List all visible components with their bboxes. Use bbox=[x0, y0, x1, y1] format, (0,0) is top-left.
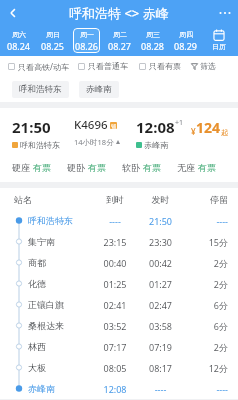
button[interactable]: 周日 bbox=[39, 28, 67, 53]
staticText: 23:15 bbox=[92, 236, 138, 248]
staticText: 12:08 bbox=[136, 117, 175, 137]
staticText: 03:52 bbox=[92, 320, 138, 332]
staticText: 02:41 bbox=[92, 299, 138, 311]
staticText: 软卧 bbox=[122, 162, 140, 173]
staticText: 07:19 bbox=[138, 341, 183, 353]
button[interactable]: 赤峰南 bbox=[0, 378, 238, 399]
staticText: 02:47 bbox=[138, 299, 183, 311]
button[interactable]: 正镶白旗 bbox=[0, 294, 238, 315]
staticText: 124 bbox=[196, 118, 221, 137]
staticText: 桑根达来 bbox=[28, 320, 64, 331]
button[interactable]: 21:50 bbox=[0, 108, 238, 182]
staticText: 只看有票 bbox=[149, 61, 181, 71]
staticText: 呼和浩特东 bbox=[28, 215, 73, 226]
staticText: 有票 bbox=[198, 162, 216, 173]
staticText: ---- bbox=[183, 383, 228, 395]
staticText: 21:50 bbox=[138, 215, 183, 227]
staticText: ---- bbox=[183, 215, 228, 227]
button[interactable]: More options bbox=[212, 0, 238, 26]
button[interactable]: 呼和浩特东 bbox=[12, 81, 69, 98]
staticText: 周日 bbox=[46, 30, 60, 39]
staticText: 只看普通车 bbox=[88, 61, 128, 71]
staticText: 站名 bbox=[14, 194, 92, 205]
staticText: 周一 bbox=[80, 30, 94, 39]
staticText: 2分 bbox=[183, 278, 228, 290]
staticText: 硬卧 bbox=[67, 162, 85, 173]
staticText: 08:17 bbox=[138, 362, 183, 374]
staticText: 2分 bbox=[183, 257, 228, 269]
staticText: 08.28 bbox=[141, 40, 165, 52]
staticText: 周二 bbox=[113, 30, 127, 39]
button[interactable]: 周一 bbox=[73, 28, 100, 53]
staticText: 硬座 bbox=[12, 162, 30, 173]
staticText: 有票 bbox=[88, 162, 106, 173]
staticText: 集宁南 bbox=[28, 236, 55, 247]
staticText: 08.27 bbox=[108, 40, 132, 52]
staticText: 08.29 bbox=[174, 40, 198, 52]
button[interactable]: 林西 bbox=[0, 336, 238, 357]
staticText: 07:17 bbox=[92, 341, 138, 353]
staticText: 化德 bbox=[28, 278, 46, 289]
staticText: 01:27 bbox=[138, 278, 183, 290]
staticText: 15分 bbox=[183, 236, 228, 248]
button[interactable]: 硬座 bbox=[12, 162, 67, 173]
staticText: 铺 bbox=[111, 123, 116, 129]
button[interactable]: 赤峰南 bbox=[79, 81, 119, 98]
staticText: 赤峰南 bbox=[28, 383, 55, 394]
button[interactable]: 大板 bbox=[0, 357, 238, 378]
staticText: 周六 bbox=[12, 30, 26, 39]
staticText: 08.25 bbox=[41, 40, 65, 52]
staticText: 只看高铁/动车 bbox=[18, 61, 69, 72]
button[interactable]: Calendar bbox=[202, 27, 236, 53]
staticText: 有票 bbox=[33, 162, 51, 173]
staticText: ---- bbox=[138, 383, 183, 395]
staticText: 周四 bbox=[179, 30, 193, 39]
staticText: 08.24 bbox=[7, 40, 31, 52]
staticText: 到时 bbox=[92, 194, 138, 205]
staticText: +1 bbox=[175, 118, 184, 128]
staticText: 正镶白旗 bbox=[28, 299, 64, 310]
button[interactable]: 只看高铁/动车 bbox=[8, 61, 78, 72]
button[interactable]: 硬卧 bbox=[67, 162, 122, 173]
staticText: 筛选 bbox=[200, 61, 216, 71]
button[interactable]: 只看有票 bbox=[139, 61, 191, 71]
button[interactable]: 周三 bbox=[139, 28, 166, 53]
button[interactable]: 集宁南 bbox=[0, 231, 238, 252]
staticText: 发时 bbox=[138, 194, 183, 205]
staticText: 00:42 bbox=[138, 257, 183, 269]
staticText: 呼和浩特 <> 赤峰 bbox=[69, 4, 169, 22]
staticText: 6分 bbox=[183, 299, 228, 311]
staticText: 23:30 bbox=[138, 236, 183, 248]
staticText: 08.26 bbox=[75, 40, 99, 52]
staticText: 周三 bbox=[146, 30, 160, 39]
button[interactable]: 桑根达来 bbox=[0, 315, 238, 336]
button[interactable]: 周四 bbox=[172, 28, 199, 53]
staticText: 赤峰南 bbox=[86, 84, 112, 95]
staticText: 00:40 bbox=[92, 257, 138, 269]
button[interactable]: 只看普通车 bbox=[78, 61, 139, 71]
button[interactable]: 软卧 bbox=[122, 162, 177, 173]
staticText: 08:05 bbox=[92, 362, 138, 374]
button[interactable]: 商都 bbox=[0, 252, 238, 273]
staticText: 12:08 bbox=[92, 383, 138, 395]
staticText: 起 bbox=[221, 128, 228, 137]
button[interactable]: 周二 bbox=[106, 28, 133, 53]
staticText: 日历 bbox=[212, 42, 226, 51]
button[interactable]: 化德 bbox=[0, 273, 238, 294]
button[interactable]: 周六 bbox=[5, 28, 33, 53]
staticText: 无座 bbox=[177, 162, 195, 173]
button[interactable]: 呼和浩特东 bbox=[0, 210, 238, 231]
staticText: 呼和浩特东 bbox=[20, 140, 60, 150]
staticText: K4696 bbox=[74, 117, 108, 133]
staticText: 12分 bbox=[183, 362, 228, 374]
staticText: 14小时18分 bbox=[74, 137, 114, 147]
staticText: 03:58 bbox=[138, 320, 183, 332]
button[interactable]: Back bbox=[0, 0, 26, 26]
staticText: 2分 bbox=[183, 341, 228, 353]
button[interactable]: 无座 bbox=[177, 162, 228, 173]
staticText: 大板 bbox=[28, 362, 46, 373]
staticText: 01:25 bbox=[92, 278, 138, 290]
button[interactable]: 筛选 bbox=[191, 61, 230, 71]
staticText: 6分 bbox=[183, 320, 228, 332]
staticText: 赤峰南 bbox=[144, 140, 168, 150]
